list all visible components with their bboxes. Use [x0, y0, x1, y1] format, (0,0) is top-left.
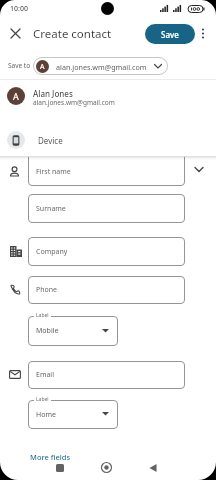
button[interactable] [10, 28, 21, 39]
staticText: Save to [8, 61, 31, 70]
button[interactable]: More fields [30, 452, 71, 462]
staticText: Device [38, 135, 63, 146]
button[interactable]: Mobile [28, 316, 118, 346]
staticText: Email [36, 370, 54, 380]
staticText: Surname [36, 204, 66, 214]
staticText: Label [36, 312, 49, 319]
button[interactable] [200, 28, 206, 40]
staticText: Alan Jones [33, 88, 73, 99]
staticText: Home [36, 410, 56, 420]
staticText: A [40, 62, 45, 72]
button[interactable]: Surname [28, 194, 185, 223]
staticText: alan.jones.wm@gmail.com [56, 62, 147, 72]
button[interactable]: Email [28, 361, 185, 389]
button[interactable]: A [0, 84, 216, 110]
staticText: A [13, 90, 19, 102]
staticText: Create contact [33, 26, 112, 42]
staticText: Save [161, 29, 179, 40]
button[interactable] [52, 460, 67, 475]
staticText: More fields [30, 452, 71, 462]
button[interactable]: Device [0, 128, 216, 152]
button[interactable] [99, 460, 114, 475]
staticText: First name [36, 167, 71, 177]
button[interactable]: Phone [28, 276, 185, 304]
button[interactable] [194, 166, 204, 173]
button[interactable]: Save [145, 24, 195, 44]
staticText: Mobile [36, 326, 59, 336]
staticText: Label [36, 396, 49, 403]
staticText: 10:00 [10, 4, 28, 14]
button[interactable] [145, 460, 160, 475]
button[interactable]: A [33, 57, 168, 75]
staticText: alan.jones.wm@gmail.com [33, 98, 115, 107]
staticText: Phone [36, 285, 58, 295]
staticText: Company [36, 247, 68, 257]
button[interactable]: Home [28, 400, 118, 429]
button[interactable] [28, 153, 185, 186]
button[interactable]: Company [28, 237, 185, 266]
